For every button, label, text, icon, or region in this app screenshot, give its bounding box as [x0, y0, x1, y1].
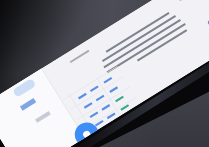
button[interactable]: Call — [66, 118, 88, 140]
